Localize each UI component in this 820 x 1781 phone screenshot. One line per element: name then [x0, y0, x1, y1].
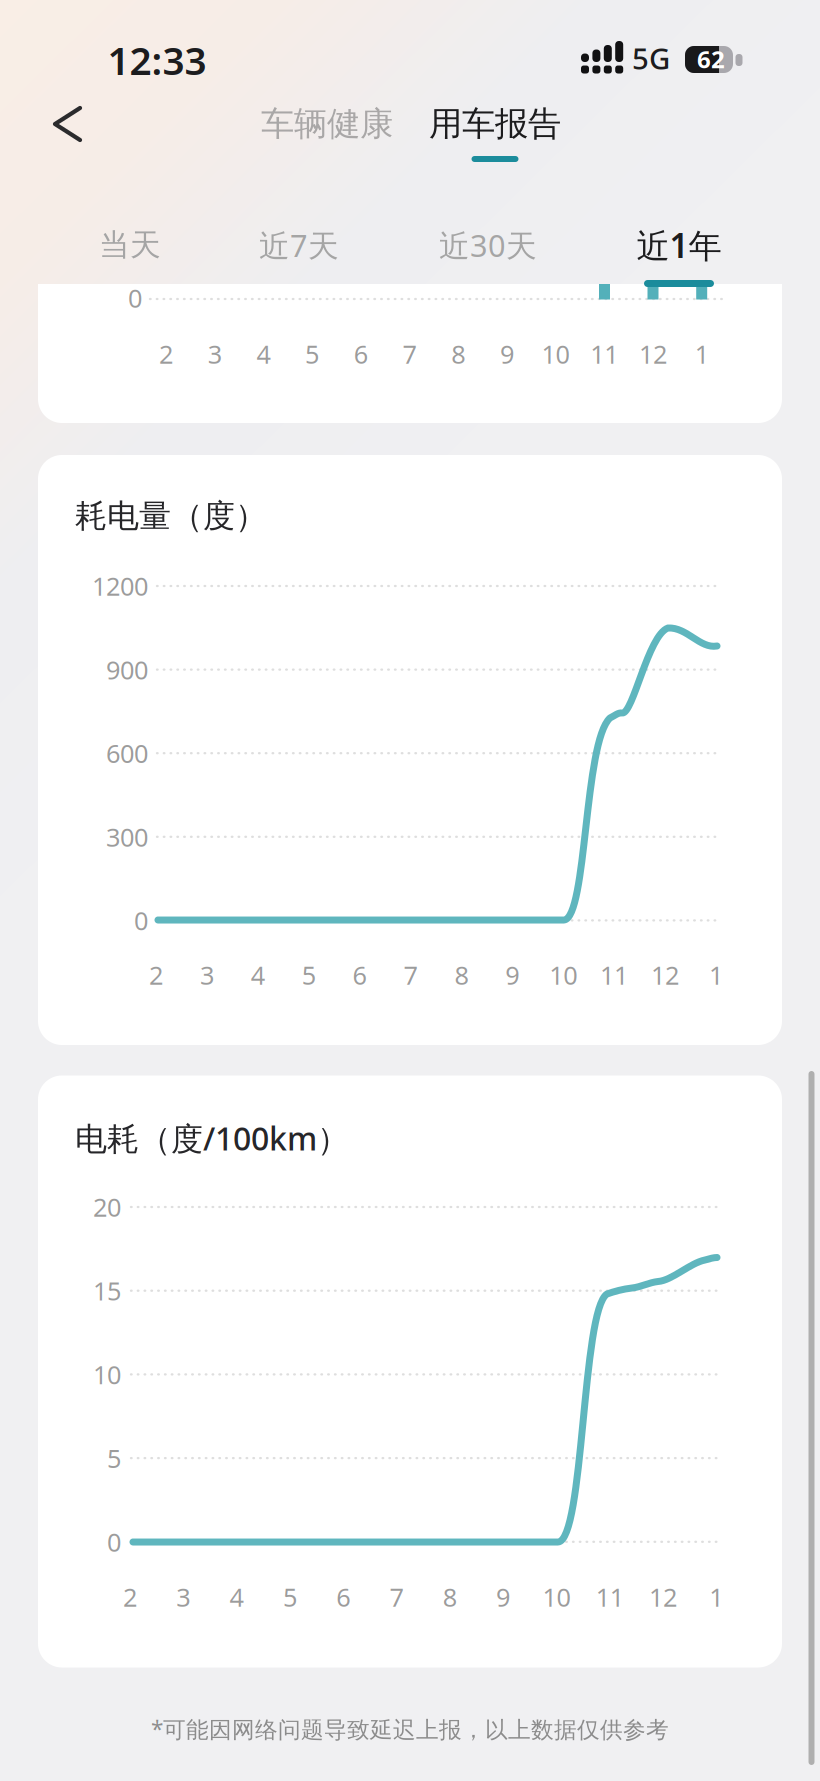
staticText: 9 [496, 1580, 510, 1614]
staticText: 2 [149, 958, 163, 992]
staticText: 1200 [92, 569, 148, 603]
staticText: 5 [283, 1580, 297, 1614]
staticText: 近30天 [439, 225, 537, 265]
staticText: 6 [353, 958, 367, 992]
staticText: 车辆健康 [261, 103, 393, 144]
staticText: 5G [632, 38, 670, 77]
staticText: 近7天 [259, 225, 339, 265]
staticText: 电耗（度/100km） [75, 1117, 349, 1159]
staticText: 3 [200, 958, 214, 992]
staticText: 0 [128, 281, 142, 315]
button[interactable]: 近1年 [636, 223, 721, 267]
staticText: 5 [107, 1441, 121, 1475]
staticText: 8 [443, 1580, 457, 1614]
staticText: 9 [505, 958, 519, 992]
staticText: 62 [697, 43, 725, 75]
staticText: 5 [302, 958, 316, 992]
staticText: 用车报告 [429, 103, 561, 144]
staticText: 300 [106, 820, 148, 854]
staticText: 1 [709, 958, 723, 992]
staticText: 1 [709, 1580, 723, 1614]
staticText: 2 [123, 1580, 137, 1614]
staticText: 20 [93, 1190, 121, 1224]
staticText: 0 [107, 1525, 121, 1559]
button[interactable]: 用车报告 [429, 103, 561, 144]
button[interactable]: 近30天 [439, 225, 537, 265]
staticText: 6 [354, 337, 368, 371]
staticText: 耗电量（度） [75, 496, 267, 536]
staticText: 4 [230, 1580, 244, 1614]
staticText: 2 [159, 337, 173, 371]
staticText: 7 [403, 958, 417, 992]
staticText: 12:33 [107, 34, 206, 86]
staticText: 11 [590, 337, 618, 371]
staticText: 4 [256, 337, 270, 371]
staticText: 10 [549, 958, 577, 992]
staticText: 0 [134, 904, 148, 937]
button[interactable]: 当天 [99, 226, 161, 264]
button[interactable]: Back [38, 96, 94, 152]
staticText: 3 [176, 1580, 190, 1614]
staticText: 10 [542, 337, 570, 371]
staticText: 4 [251, 958, 265, 992]
staticText: 12 [639, 337, 667, 371]
staticText: 10 [542, 1580, 570, 1614]
staticText: 8 [454, 958, 468, 992]
staticText: 近1年 [636, 223, 721, 267]
staticText: 7 [402, 337, 416, 371]
button[interactable]: 车辆健康 [261, 103, 393, 144]
staticText: 5 [305, 337, 319, 371]
staticText: 900 [106, 653, 148, 686]
staticText: 12 [651, 958, 679, 992]
staticText: 9 [500, 337, 514, 371]
staticText: 15 [93, 1274, 121, 1307]
staticText: 11 [600, 958, 628, 992]
staticText: 12 [649, 1580, 677, 1614]
staticText: 6 [336, 1580, 350, 1614]
staticText: 600 [106, 736, 148, 770]
staticText: 1 [695, 337, 709, 371]
staticText: 3 [208, 337, 222, 371]
staticText: 7 [389, 1580, 403, 1614]
staticText: 10 [93, 1358, 121, 1391]
staticText: *可能因网络问题导致延迟上报，以上数据仅供参考 [151, 1714, 669, 1744]
staticText: 8 [451, 337, 465, 371]
staticText: 11 [596, 1580, 624, 1614]
staticText: 当天 [99, 226, 161, 264]
button[interactable]: 近7天 [259, 225, 339, 265]
